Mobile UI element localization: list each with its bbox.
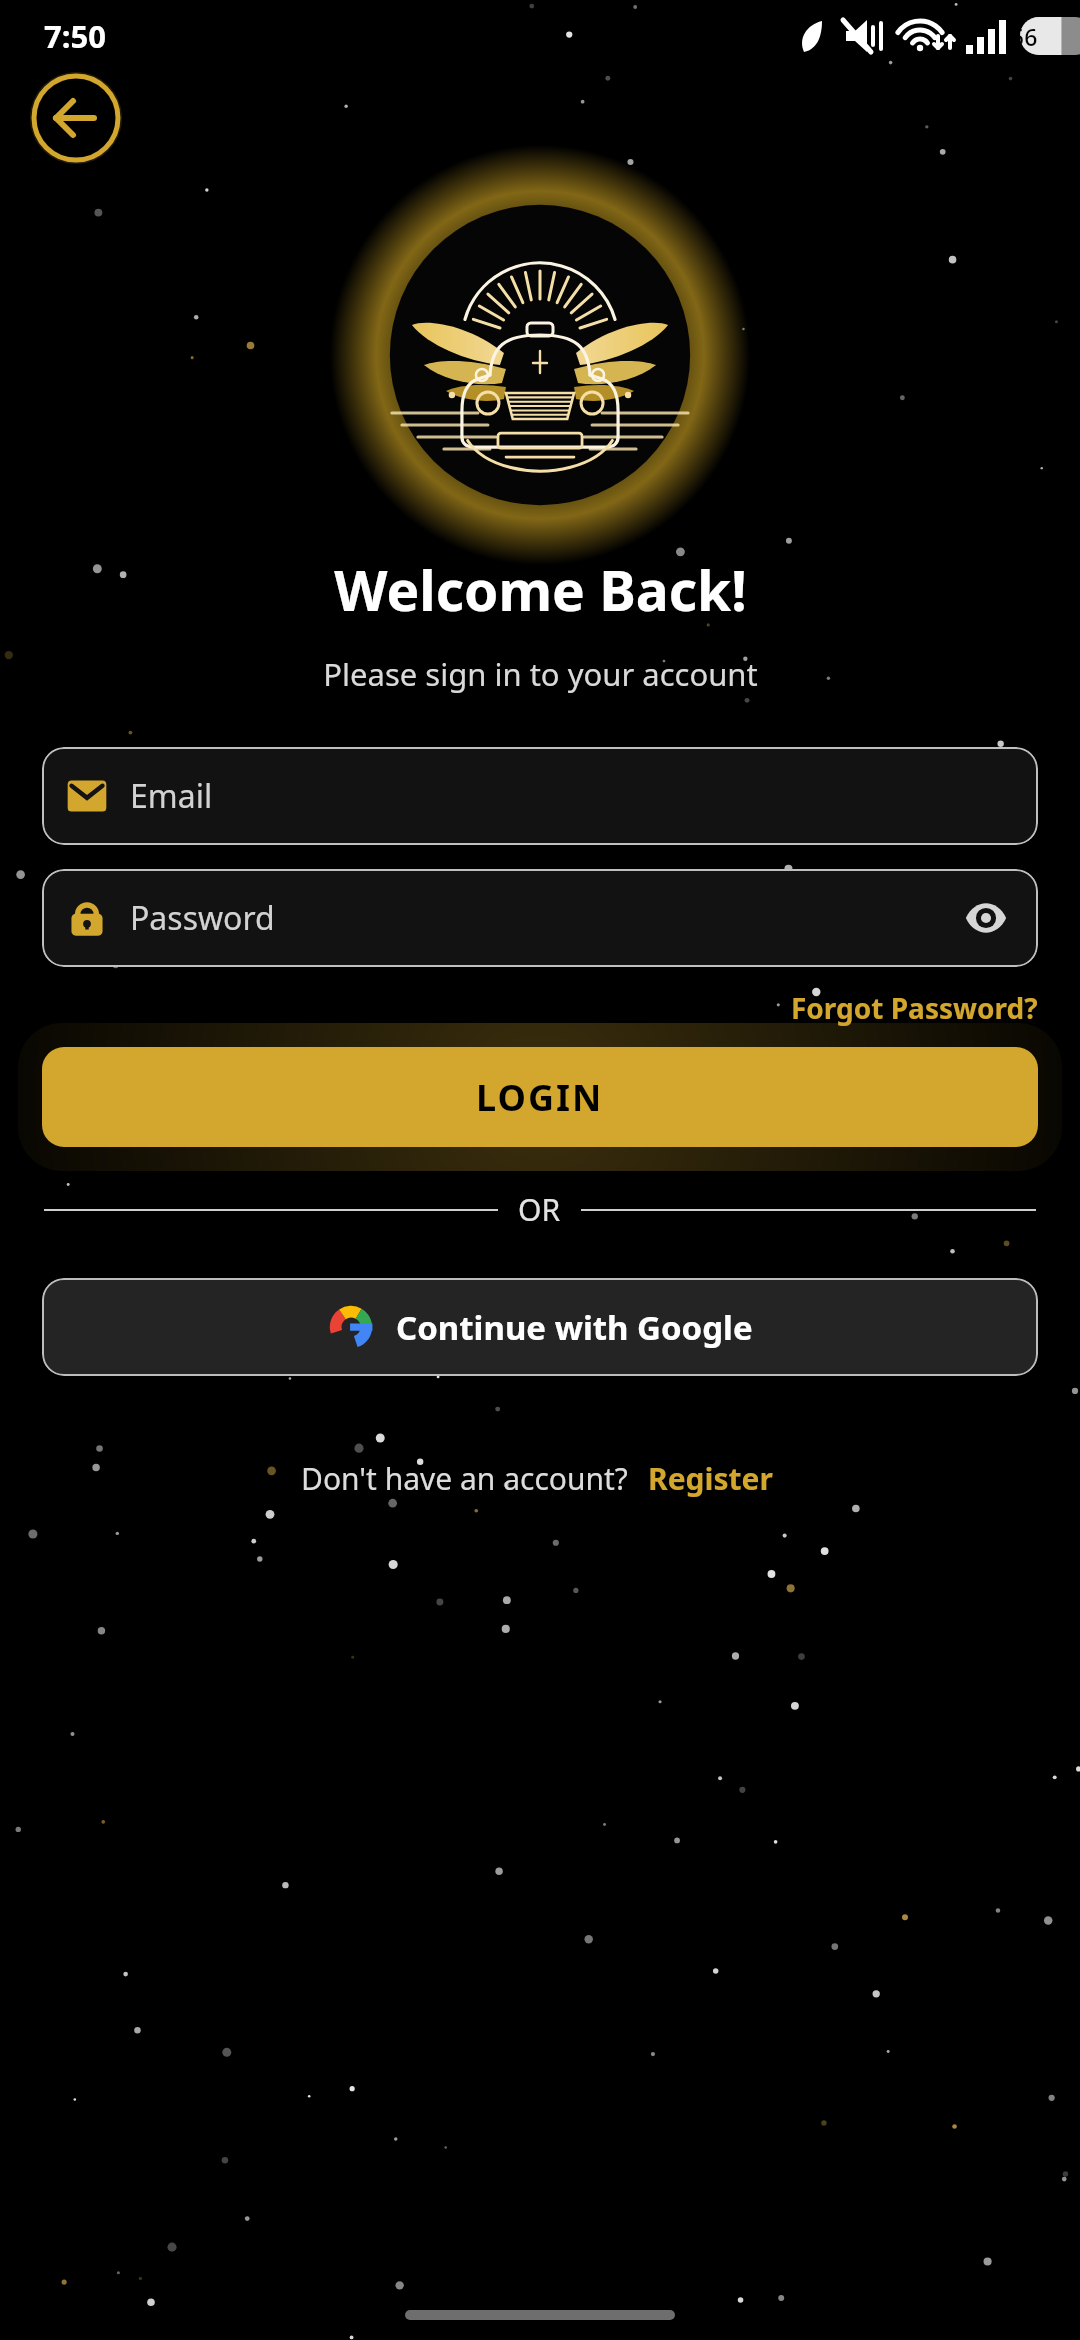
staticText: Password xyxy=(130,896,275,940)
button[interactable]: Forgot Password? xyxy=(785,985,1044,1031)
staticText: LOGIN xyxy=(476,1073,604,1122)
staticText: Don't have an account? xyxy=(301,1458,628,1499)
staticText: Please sign in to your account xyxy=(323,653,758,695)
staticText: Continue with Google xyxy=(396,1305,753,1350)
button[interactable]: Show password xyxy=(958,890,1014,946)
staticText: OR xyxy=(518,1189,561,1230)
button[interactable]: Back xyxy=(30,72,122,164)
staticText: Welcome Back! xyxy=(334,552,747,627)
button[interactable]: Password xyxy=(42,869,1038,967)
staticText: Email xyxy=(130,774,213,818)
button[interactable]: Register xyxy=(642,1454,779,1503)
button[interactable]: LOGIN xyxy=(42,1047,1038,1147)
staticText: Register xyxy=(648,1458,773,1499)
button[interactable]: Continue with Google xyxy=(42,1278,1038,1376)
staticText: Forgot Password? xyxy=(791,989,1038,1027)
staticText: 7:50 xyxy=(44,15,106,57)
button[interactable]: Email xyxy=(42,747,1038,845)
staticText: 56 xyxy=(1011,21,1038,52)
